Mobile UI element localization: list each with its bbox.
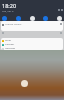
staticText: Tue, Apr 9 bbox=[2, 9, 14, 12]
button[interactable]: Android System bbox=[1, 21, 63, 31]
button[interactable]: Bluetooth bbox=[16, 16, 21, 21]
button[interactable]: Internet bbox=[2, 16, 7, 21]
staticText: Calendar bbox=[5, 43, 15, 46]
button[interactable]: Flashlight bbox=[43, 16, 48, 21]
button[interactable]: Auto rotate bbox=[57, 16, 62, 21]
staticText: Gmail bbox=[5, 39, 11, 42]
button[interactable]: Gmail bbox=[1, 38, 63, 50]
staticText: Messages bbox=[5, 47, 16, 50]
staticText: 18:20 bbox=[2, 2, 17, 9]
staticText: Android System bbox=[5, 23, 22, 26]
button[interactable]: Do Not Disturb bbox=[30, 16, 35, 21]
